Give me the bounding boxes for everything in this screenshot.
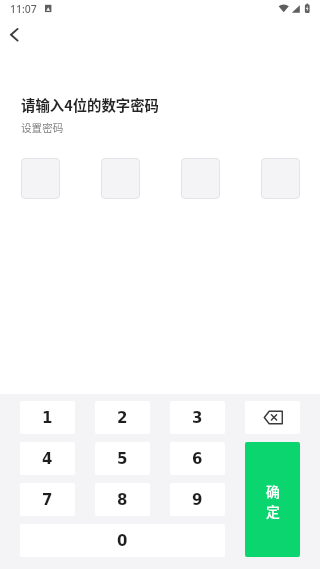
button[interactable]: 确 定 (245, 442, 300, 557)
button[interactable]: 8 (95, 483, 150, 516)
staticText: 0 (117, 532, 128, 549)
button[interactable]: Back (2, 23, 26, 47)
button[interactable]: 5 (95, 442, 150, 475)
button[interactable]: Password digit 3 (181, 158, 220, 199)
button[interactable]: 4 (20, 442, 75, 475)
button[interactable]: 3 (170, 401, 225, 434)
staticText: 5 (117, 450, 128, 467)
button[interactable]: 2 (95, 401, 150, 434)
button[interactable]: Password digit 4 (261, 158, 300, 199)
staticText: 3 (192, 409, 203, 426)
button[interactable]: 9 (170, 483, 225, 516)
button[interactable]: 6 (170, 442, 225, 475)
staticText: 6 (192, 450, 203, 467)
staticText: 4 (42, 450, 53, 467)
staticText: 9 (192, 491, 203, 508)
staticText: 2 (117, 409, 128, 426)
staticText: 1 (42, 409, 53, 426)
staticText: 11:07 (10, 2, 37, 16)
staticText: 请输入4位的数字密码 (21, 94, 160, 115)
staticText: 8 (117, 491, 128, 508)
button[interactable]: 7 (20, 483, 75, 516)
staticText: 确 定 (266, 481, 280, 521)
staticText: 设置密码 (21, 120, 64, 135)
button[interactable]: 0 (20, 524, 225, 557)
button[interactable]: Password digit 1 (21, 158, 60, 199)
button[interactable]: Password digit 2 (101, 158, 140, 199)
button[interactable]: 1 (20, 401, 75, 434)
staticText: 7 (42, 491, 53, 508)
button[interactable]: Backspace (245, 401, 300, 434)
